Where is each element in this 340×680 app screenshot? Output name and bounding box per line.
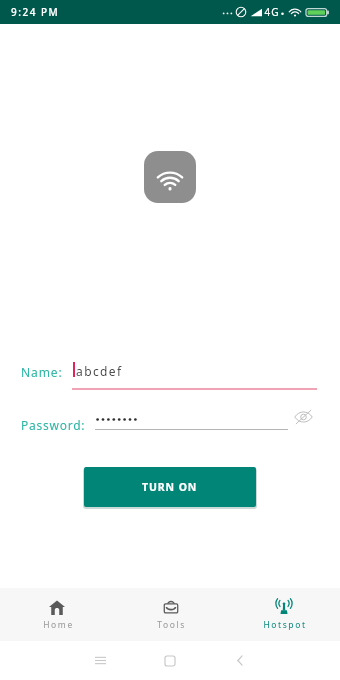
staticText: Password:	[21, 417, 86, 433]
button[interactable]: Show password	[291, 405, 315, 429]
staticText: 4G	[264, 5, 279, 19]
staticText: 9:24 PM	[11, 5, 60, 19]
button[interactable]: TURN ON	[84, 467, 256, 507]
button[interactable]: Recents	[80, 641, 120, 680]
staticText: abcdef	[76, 363, 123, 379]
button[interactable]: Hotspot	[227, 588, 340, 641]
staticText: Hotspot	[263, 619, 307, 631]
button[interactable]: Home	[0, 588, 114, 641]
button[interactable]: Home	[150, 641, 190, 680]
staticText: Name:	[21, 364, 63, 380]
staticText: Tools	[157, 619, 186, 631]
button[interactable]: Tools	[114, 588, 227, 641]
button[interactable]: Back	[220, 641, 260, 680]
staticText: TURN ON	[142, 480, 198, 494]
staticText: Home	[43, 619, 74, 631]
